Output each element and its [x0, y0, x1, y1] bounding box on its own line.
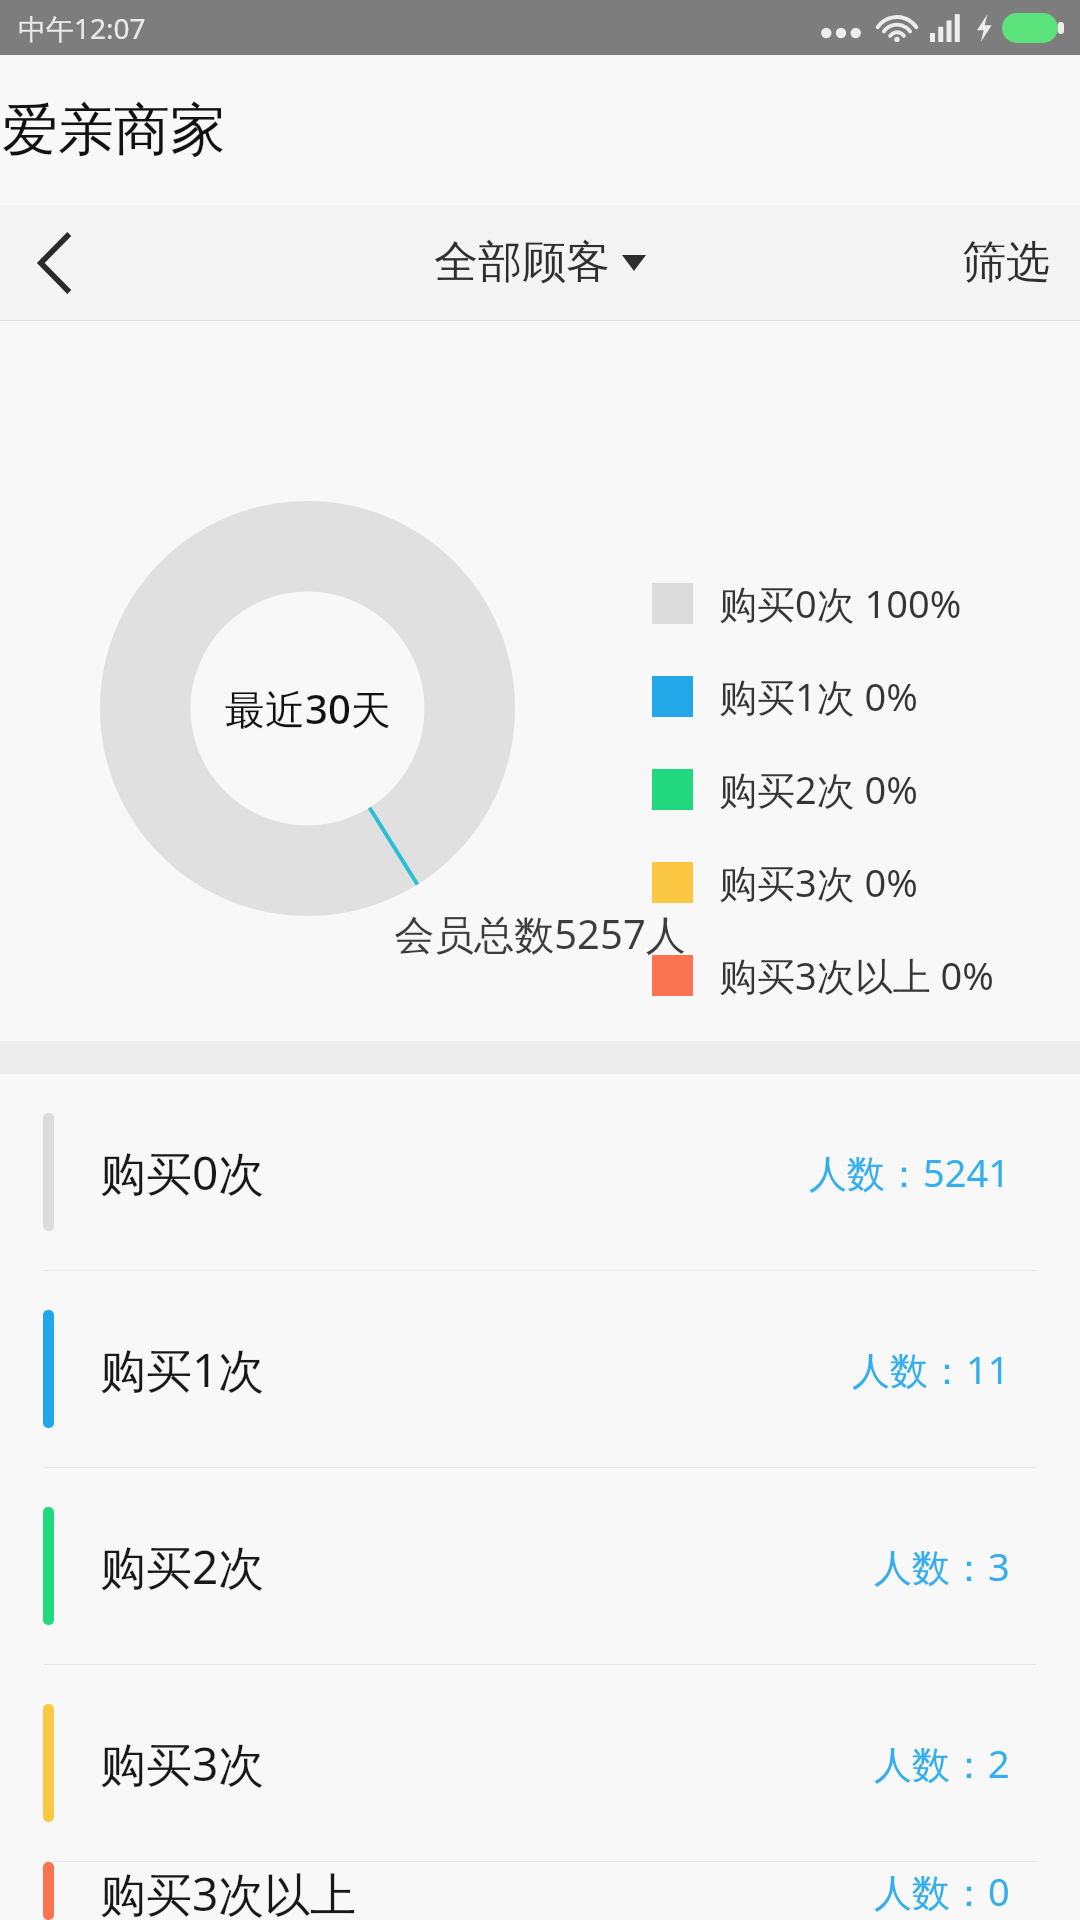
button[interactable]: 购买0次: [0, 1074, 1080, 1270]
staticText: 购买3次: [100, 1732, 265, 1795]
staticText: 会员总数5257人: [394, 906, 686, 961]
button[interactable]: 购买1次: [0, 1271, 1080, 1467]
staticText: 购买0次: [100, 1141, 265, 1204]
staticText: 人数：11: [852, 1343, 1010, 1395]
staticText: 购买1次 0%: [719, 670, 918, 722]
button[interactable]: Back: [0, 205, 110, 320]
staticText: 中午12:07: [18, 9, 146, 47]
staticText: 购买2次 0%: [719, 763, 918, 815]
staticText: 筛选: [962, 235, 1050, 290]
staticText: 爱亲商家: [2, 95, 226, 166]
staticText: 购买0次 100%: [719, 577, 962, 629]
button[interactable]: 购买3次: [0, 1665, 1080, 1861]
button[interactable]: 购买2次: [0, 1468, 1080, 1664]
button[interactable]: 全部顾客: [414, 221, 666, 304]
staticText: 购买3次以上 0%: [719, 949, 994, 1001]
staticText: 人数：5241: [809, 1146, 1010, 1198]
button[interactable]: 购买3次以上: [0, 1862, 1080, 1920]
staticText: 人数：0: [874, 1865, 1010, 1917]
staticText: 人数：3: [874, 1540, 1010, 1592]
staticText: 最近30天: [225, 681, 391, 736]
staticText: 人数：2: [874, 1737, 1010, 1789]
staticText: 购买3次 0%: [719, 856, 918, 908]
button[interactable]: 筛选: [932, 217, 1080, 308]
staticText: 购买3次以上: [100, 1862, 357, 1920]
staticText: 全部顾客: [434, 235, 610, 290]
staticText: 购买2次: [100, 1535, 265, 1598]
staticText: 购买1次: [100, 1338, 265, 1401]
